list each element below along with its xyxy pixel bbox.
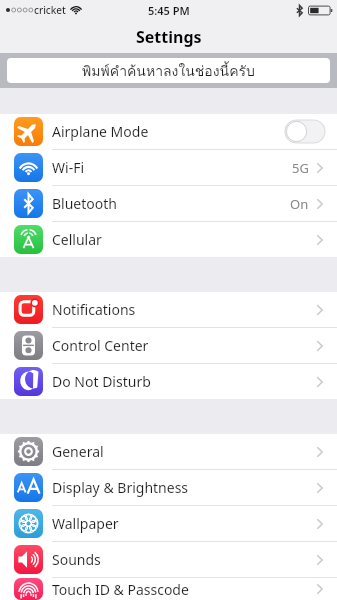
button[interactable]: พิมพ์คำค้นหาลงในช่องนี้ครับ <box>7 58 330 83</box>
staticText: 5G <box>292 159 309 177</box>
staticText: Settings <box>136 26 202 48</box>
staticText: Wallpaper <box>52 514 316 533</box>
staticText: Airplane Mode <box>52 122 285 141</box>
staticText: General <box>52 442 316 461</box>
button[interactable]: General <box>0 434 337 469</box>
staticText: Control Center <box>52 336 316 355</box>
button[interactable]: Do Not Disturb <box>0 364 337 399</box>
staticText: Display & Brightness <box>52 478 316 497</box>
button[interactable]: Wallpaper <box>0 506 337 541</box>
button[interactable]: Bluetooth <box>0 186 337 221</box>
staticText: Touch ID & Passcode <box>52 580 316 599</box>
staticText: Wi-Fi <box>52 158 292 177</box>
staticText: Sounds <box>52 550 316 569</box>
button[interactable]: Cellular <box>0 222 337 257</box>
button[interactable]: Airplane Mode <box>0 114 337 149</box>
staticText: Cellular <box>52 230 316 249</box>
staticText: Bluetooth <box>52 194 290 213</box>
staticText: On <box>290 195 309 213</box>
staticText: cricket <box>34 3 66 17</box>
staticText: 5:45 PM <box>148 3 190 18</box>
staticText: พิมพ์คำค้นหาลงในช่องนี้ครับ <box>82 60 255 82</box>
staticText: Notifications <box>52 300 316 319</box>
button[interactable]: Wi-Fi <box>0 150 337 185</box>
button[interactable]: Notifications <box>0 292 337 327</box>
staticText: Do Not Disturb <box>52 372 316 391</box>
button[interactable]: Sounds <box>0 542 337 577</box>
button[interactable]: Display & Brightness <box>0 470 337 505</box>
button[interactable]: Airplane Mode toggle <box>285 120 325 143</box>
button[interactable]: Touch ID & Passcode <box>0 578 337 600</box>
button[interactable]: Control Center <box>0 328 337 363</box>
